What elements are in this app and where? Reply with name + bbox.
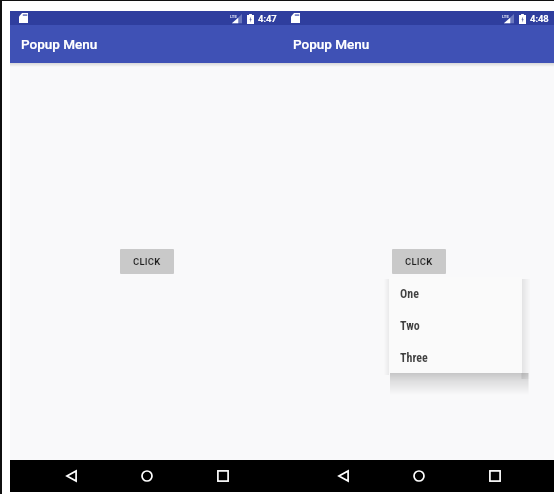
button[interactable]: Home (394, 460, 444, 492)
button[interactable]: One (389, 277, 522, 309)
button[interactable]: Recents (198, 460, 248, 492)
staticText: 4:47 (258, 13, 277, 24)
staticText: LTE (230, 14, 237, 19)
button[interactable]: Recents (470, 460, 520, 492)
staticText: CLICK (133, 256, 161, 267)
staticText: Two (400, 319, 420, 333)
staticText: Popup Menu (21, 36, 98, 52)
staticText: Popup Menu (293, 36, 370, 52)
button[interactable]: Back (318, 460, 368, 492)
staticText: One (400, 287, 419, 301)
staticText: CLICK (405, 256, 433, 267)
button[interactable]: CLICK (120, 249, 174, 274)
button[interactable]: Three (389, 341, 522, 373)
staticText: Three (400, 351, 428, 365)
button[interactable]: Home (122, 460, 172, 492)
staticText: LTE (502, 14, 509, 19)
button[interactable]: CLICK (392, 249, 446, 274)
button[interactable]: Back (46, 460, 96, 492)
staticText: 4:48 (530, 13, 549, 24)
button[interactable]: Two (389, 309, 522, 341)
